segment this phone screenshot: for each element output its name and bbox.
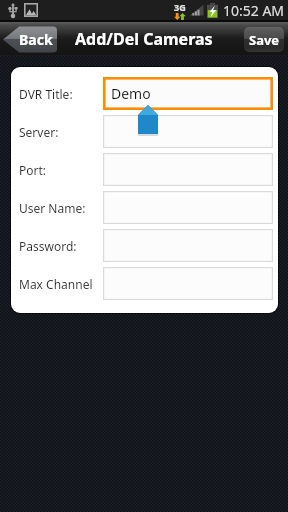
staticText: Back [19, 30, 53, 49]
staticText: DVR Title: [19, 86, 73, 102]
staticText: Port: [19, 162, 47, 178]
staticText: Server: [19, 124, 59, 140]
button[interactable] [103, 115, 273, 148]
staticText: Password: [19, 238, 77, 254]
staticText: Max Channel [19, 276, 93, 292]
button[interactable]: Save [244, 27, 284, 52]
button[interactable] [103, 267, 273, 300]
button[interactable] [103, 191, 273, 224]
button[interactable]: Back [3, 26, 57, 53]
staticText: 3G [174, 1, 186, 13]
staticText: Demo [111, 84, 151, 103]
staticText: User Name: [19, 200, 86, 216]
staticText: Save [249, 31, 280, 49]
staticText: Add/Del Cameras [75, 28, 213, 50]
button[interactable]: Demo [103, 77, 273, 110]
button[interactable] [103, 153, 273, 186]
button[interactable] [103, 229, 273, 262]
staticText: 10:52 AM [223, 1, 285, 20]
